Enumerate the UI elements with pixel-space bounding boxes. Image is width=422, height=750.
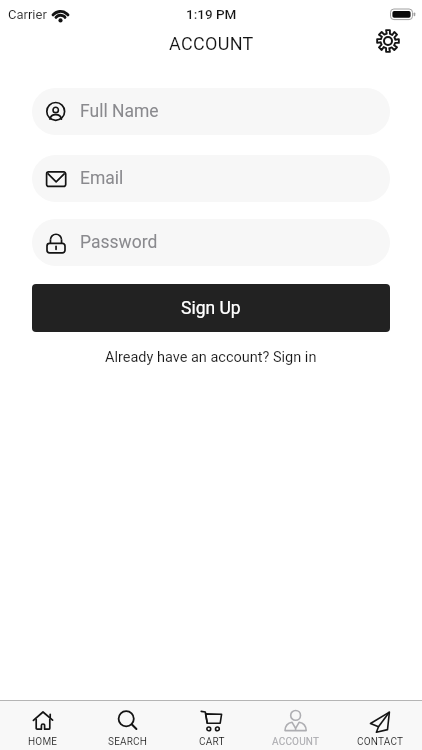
staticText: Email xyxy=(80,168,124,189)
button[interactable]: Already have an account? Sign in xyxy=(0,344,422,370)
staticText: CONTACT xyxy=(357,736,404,748)
button[interactable]: Password xyxy=(32,219,390,266)
staticText: Sign Up xyxy=(181,298,241,319)
staticText: 1:19 PM xyxy=(186,6,237,22)
staticText: Carrier xyxy=(8,7,47,22)
button[interactable]: CONTACT xyxy=(338,701,422,750)
button[interactable]: HOME xyxy=(0,701,85,750)
button[interactable]: ACCOUNT xyxy=(254,701,338,750)
staticText: HOME xyxy=(28,736,58,748)
staticText: CART xyxy=(199,736,225,748)
button[interactable]: Full Name xyxy=(32,88,390,135)
button[interactable]: CART xyxy=(170,701,254,750)
staticText: ACCOUNT xyxy=(272,736,320,748)
staticText: Full Name xyxy=(80,101,159,122)
button[interactable] xyxy=(375,28,401,54)
staticText: SEARCH xyxy=(108,736,148,748)
staticText: Already have an account? Sign in xyxy=(105,349,317,366)
button[interactable]: Sign Up xyxy=(32,284,390,332)
staticText: ACCOUNT xyxy=(169,33,254,54)
button[interactable]: Email xyxy=(32,155,390,202)
button[interactable]: SEARCH xyxy=(85,701,170,750)
staticText: Password xyxy=(80,232,158,253)
